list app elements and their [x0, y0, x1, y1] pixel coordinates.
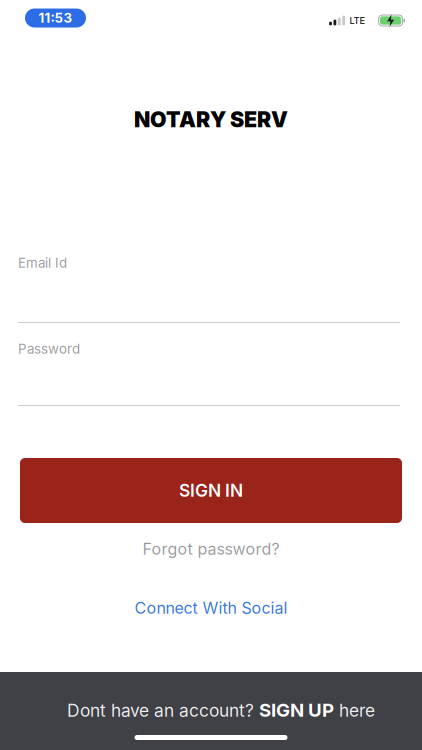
staticText: here — [334, 700, 375, 721]
button[interactable]: Email Id — [0, 254, 422, 323]
staticText: SIGN IN — [179, 480, 243, 501]
button[interactable]: Password — [0, 340, 422, 406]
staticText: SIGN UP — [259, 699, 334, 721]
staticText: Forgot password? — [142, 540, 279, 558]
staticText: Connect With Social — [134, 599, 287, 617]
staticText: Password — [18, 341, 80, 357]
button[interactable]: SIGN IN — [20, 458, 402, 523]
staticText: NOTARY SERV — [134, 107, 288, 132]
staticText: LTE — [350, 15, 366, 26]
staticText: 11:53 — [38, 10, 72, 26]
button[interactable]: Connect With Social — [134, 598, 287, 618]
staticText: Email Id — [18, 255, 67, 271]
button[interactable]: Dont have an account? — [57, 700, 365, 720]
staticText: Dont have an account? — [67, 700, 259, 721]
button[interactable]: Forgot password? — [142, 539, 279, 559]
